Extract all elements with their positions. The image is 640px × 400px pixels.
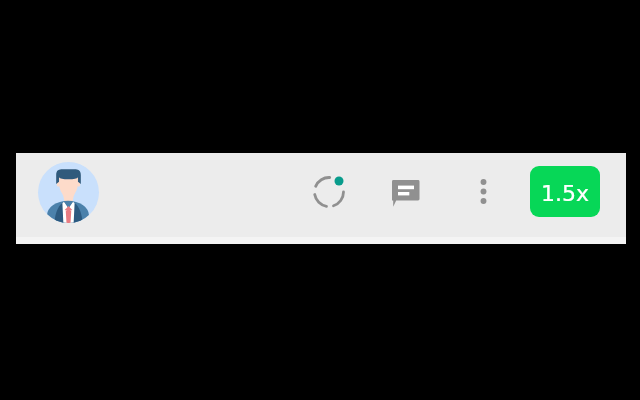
button[interactable]: 1.5x [530,166,600,217]
button[interactable]: Profile [38,162,99,223]
button[interactable]: More options [463,171,503,211]
button[interactable]: Messages [383,170,429,216]
staticText: 1.5x [541,181,590,207]
button[interactable]: Sync [305,168,353,216]
